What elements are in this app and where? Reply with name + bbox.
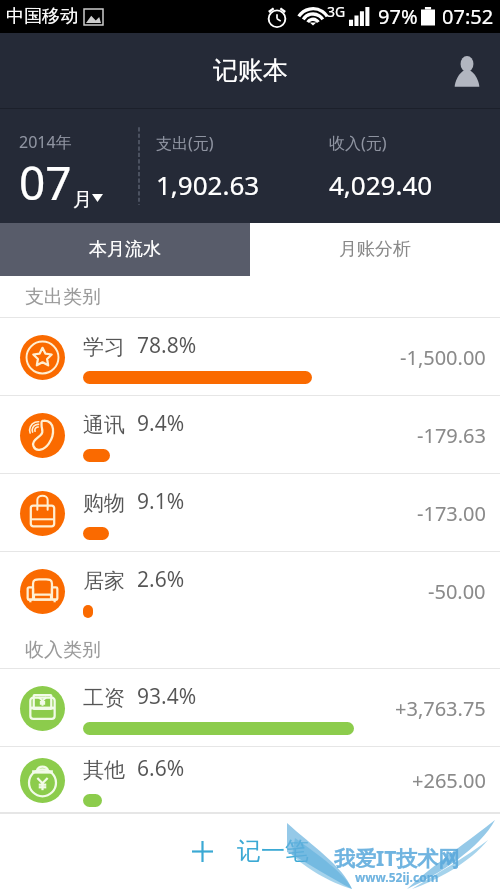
button[interactable]: 通讯 [0,396,500,474]
staticText: 本月流水 [89,238,161,261]
staticText: 支出(元) [156,132,214,154]
staticText: 1,902.63 [156,167,260,202]
staticText: 月账分析 [339,238,411,261]
button[interactable]: 其他 [0,747,500,813]
staticText: 通讯 [83,412,125,438]
button[interactable]: Profile [442,46,492,96]
staticText: 工资 [83,685,125,711]
staticText: 记一笔 [237,836,309,866]
staticText: 其他 [83,757,125,783]
staticText: 2.6% [137,565,185,594]
staticText: +3,763.75 [395,695,486,722]
button[interactable]: 2014年 [19,120,139,223]
staticText: 3G [327,2,346,21]
staticText: 收入类别 [25,638,101,662]
staticText: 9.1% [137,487,185,516]
staticText: -50.00 [428,578,486,605]
staticText: 学习 [83,334,125,360]
button[interactable]: 月账分析 [250,223,500,276]
staticText: -173.00 [417,500,486,527]
staticText: -1,500.00 [400,344,486,371]
staticText: 07 [19,151,72,214]
staticText: 97% [378,3,418,30]
staticText: 2014年 [19,131,72,153]
staticText: 9.4% [137,409,185,438]
staticText: 收入(元) [329,132,387,154]
staticText: 07:52 [442,3,494,30]
staticText: 93.4% [137,682,197,711]
staticText: 购物 [83,490,125,516]
button[interactable]: 工资 [0,669,500,747]
button[interactable]: 学习 [0,318,500,396]
button[interactable]: 记一笔 [192,836,309,866]
staticText: 6.6% [137,754,185,783]
staticText: 月 [73,188,92,212]
staticText: 78.8% [137,331,197,360]
button[interactable]: 购物 [0,474,500,552]
staticText: -179.63 [417,422,486,449]
staticText: 记账本 [213,55,288,86]
staticText: 居家 [83,568,125,594]
staticText: www.52ij.com [355,869,439,885]
staticText: 中国移动 [6,5,78,28]
staticText: 支出类别 [25,285,101,309]
button[interactable]: 本月流水 [0,223,250,276]
button[interactable]: 居家 [0,552,500,630]
staticText: +265.00 [412,767,486,794]
staticText: 我爱IT技术网 [334,844,460,873]
staticText: 4,029.40 [329,167,433,202]
